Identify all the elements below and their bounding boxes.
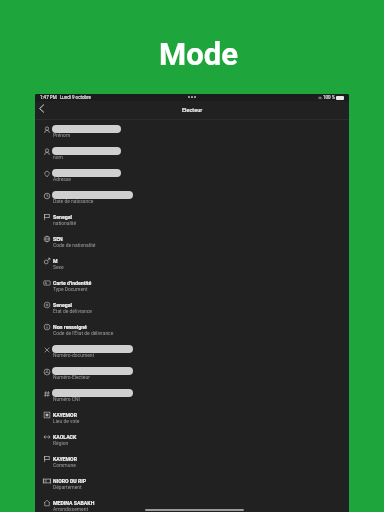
button[interactable]: MEDINA SABAKH xyxy=(35,494,349,512)
button[interactable]: Date de naissance xyxy=(35,186,349,208)
button[interactable]: SEN xyxy=(35,230,349,252)
staticText: Code de nationalité xyxy=(53,242,96,248)
button[interactable]: Senegal xyxy=(35,208,349,230)
button[interactable]: Back xyxy=(36,102,49,115)
staticText: Date de naissance xyxy=(53,198,94,204)
staticText: Région xyxy=(53,440,69,446)
button[interactable]: nom xyxy=(35,142,349,164)
button[interactable]: M xyxy=(35,252,349,274)
staticText: KAOLACK xyxy=(53,434,77,440)
staticText: 1:47 PM Lundi 9 octobre xyxy=(40,95,91,100)
staticText: État de délivrance xyxy=(53,308,92,314)
staticText: Code de l'État de délivrance xyxy=(53,330,114,336)
staticText: Département xyxy=(53,484,82,490)
staticText: Numéro CNI xyxy=(53,396,80,402)
staticText: M xyxy=(53,258,58,264)
button[interactable]: KAOLACK xyxy=(35,428,349,450)
button[interactable]: KAYEMOR xyxy=(35,406,349,428)
staticText: nom xyxy=(53,154,63,160)
staticText: nationalité xyxy=(53,220,77,226)
staticText: MEDINA SABAKH xyxy=(53,500,95,506)
staticText: Commune xyxy=(53,462,76,468)
staticText: Carte d'indentité xyxy=(53,280,92,286)
staticText: Prénom xyxy=(53,132,71,138)
button[interactable]: Senegal xyxy=(35,296,349,318)
button[interactable]: Non renseigné xyxy=(35,318,349,340)
staticText: Adresse xyxy=(53,176,71,182)
staticText: NIORO DU RIP xyxy=(53,478,87,484)
staticText: Numéro-document xyxy=(53,352,95,358)
staticText: 100 % xyxy=(323,95,335,100)
staticText: KAYEMOR xyxy=(53,412,77,418)
button[interactable]: Numéro-Electeur xyxy=(35,362,349,384)
staticText: SEN xyxy=(53,236,63,242)
button[interactable]: KAYEMOR xyxy=(35,450,349,472)
staticText: Senegal xyxy=(53,302,72,308)
staticText: Mode xyxy=(159,36,238,72)
button[interactable]: Carte d'indentité xyxy=(35,274,349,296)
staticText: Arrondissement xyxy=(53,506,89,512)
button[interactable]: NIORO DU RIP xyxy=(35,472,349,494)
staticText: Sexe xyxy=(53,264,64,270)
button[interactable]: Numéro CNI xyxy=(35,384,349,406)
staticText: Numéro-Electeur xyxy=(53,374,90,380)
staticText: KAYEMOR xyxy=(53,456,77,462)
staticText: Lieu de vote xyxy=(53,418,80,424)
staticText: Type Document xyxy=(53,286,88,292)
staticText: Senegal xyxy=(53,214,72,220)
staticText: Non renseigné xyxy=(53,324,87,330)
button[interactable]: Numéro-document xyxy=(35,340,349,362)
staticText: Electeur xyxy=(182,107,203,113)
button[interactable]: Prénom xyxy=(35,120,349,142)
button[interactable]: Adresse xyxy=(35,164,349,186)
